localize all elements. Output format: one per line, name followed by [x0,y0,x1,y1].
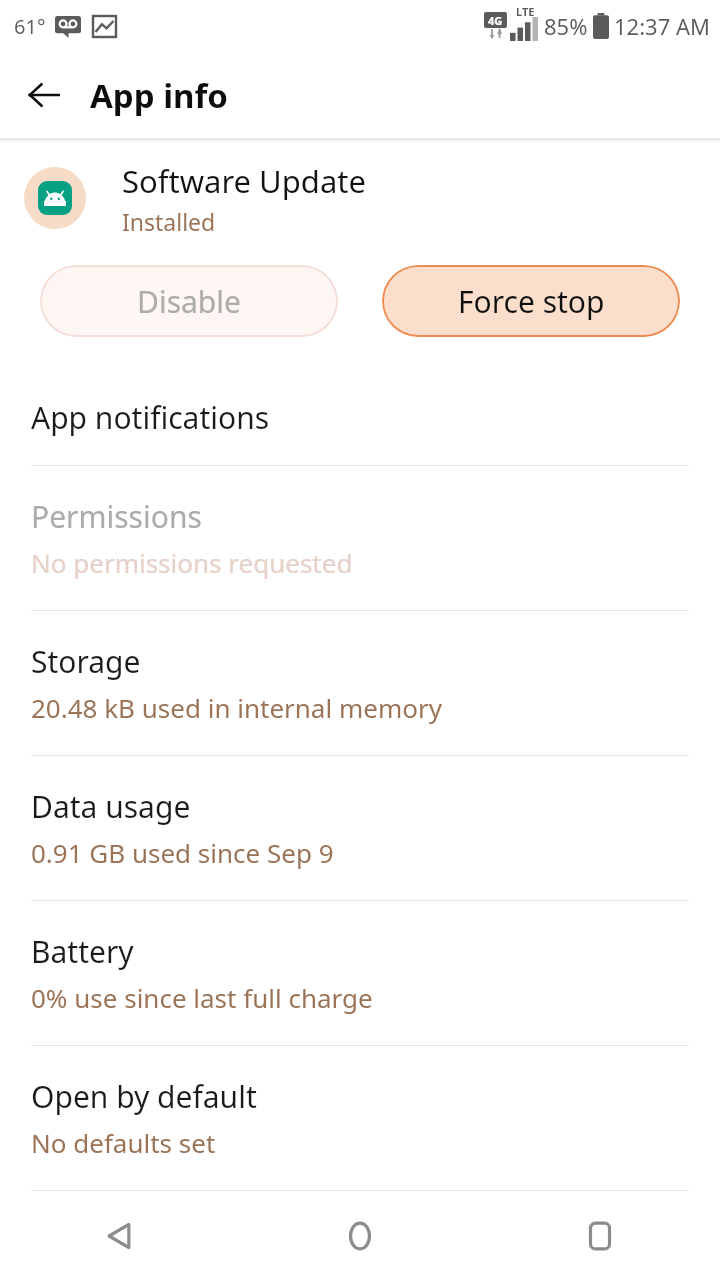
staticText: App notifications [31,397,270,438]
button[interactable]: Permissions [0,466,720,610]
staticText: Installed [122,206,216,237]
button[interactable]: Open by default [0,1046,720,1190]
staticText: LTE [516,4,535,19]
staticText: Force stop [458,281,605,322]
button[interactable]: Battery [0,901,720,1045]
staticText: Battery [31,931,134,972]
staticText: Software Update [122,160,366,202]
staticText: 12:37 AM [614,11,710,41]
button[interactable]: Data usage [0,756,720,900]
staticText: 0% use since last full charge [31,980,373,1015]
staticText: Data usage [31,786,191,827]
button[interactable]: Disable [40,265,338,337]
staticText: Storage [31,641,141,682]
staticText: No defaults set [31,1125,216,1160]
staticText: No permissions requested [31,545,353,580]
staticText: 0.91 GB used since Sep 9 [31,835,334,870]
staticText: 20.48 kB used in internal memory [31,690,442,725]
staticText: App info [90,73,228,118]
button[interactable]: Home [240,1191,480,1280]
button[interactable]: Force stop [382,265,680,337]
staticText: 85% [544,11,588,41]
button[interactable]: Back [16,67,72,123]
button[interactable]: App notifications [0,369,720,465]
staticText: Permissions [31,496,202,537]
button[interactable]: Storage [0,611,720,755]
button[interactable]: Recents [480,1191,720,1280]
staticText: 61° [14,13,46,40]
button[interactable]: Back [0,1191,240,1280]
staticText: 4G [488,13,503,28]
staticText: Disable [137,281,241,322]
staticText: Open by default [31,1076,257,1117]
